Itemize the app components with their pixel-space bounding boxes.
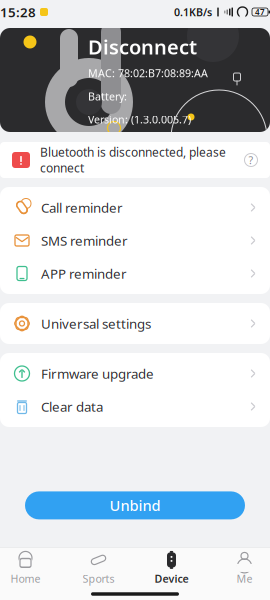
staticText: Unbind xyxy=(109,496,160,515)
staticText: ? xyxy=(248,153,253,167)
staticText: Bluetooth is disconnected, please connec… xyxy=(40,144,226,176)
staticText: 15:28 xyxy=(0,3,36,21)
button[interactable]: Clear data xyxy=(0,390,270,423)
button[interactable]: SMS reminder xyxy=(0,224,270,257)
staticText: Clear data xyxy=(41,398,103,415)
staticText: Sports xyxy=(82,571,114,586)
button[interactable]: APP reminder xyxy=(0,257,270,290)
staticText: Home xyxy=(10,571,40,586)
staticText: Device xyxy=(154,571,188,586)
staticText: Firmware upgrade xyxy=(41,365,154,382)
staticText: APP reminder xyxy=(41,265,127,282)
button[interactable]: Help xyxy=(238,147,264,173)
button[interactable] xyxy=(208,548,270,588)
button[interactable]: Call reminder xyxy=(0,191,270,224)
staticText: Battery: xyxy=(88,89,127,103)
button[interactable]: Firmware upgrade xyxy=(0,357,270,390)
staticText: Disconnect xyxy=(88,33,197,60)
staticText: Universal settings xyxy=(41,315,151,332)
button[interactable]: Universal settings xyxy=(0,307,270,340)
staticText: SMS reminder xyxy=(41,232,128,249)
button[interactable]: Unbind xyxy=(25,491,245,519)
button[interactable] xyxy=(0,548,62,588)
button[interactable]: Sports xyxy=(62,548,135,588)
staticText: 0.1KB/s xyxy=(174,5,212,19)
staticText: Version: (1.3.0.005.7) xyxy=(88,112,191,127)
staticText: 47 xyxy=(255,7,265,17)
staticText: MAC: 78:02:B7:08:89:AA xyxy=(88,66,208,80)
staticText: Me xyxy=(236,571,252,586)
staticText: Call reminder xyxy=(41,199,123,216)
button[interactable]: Device xyxy=(135,548,208,588)
